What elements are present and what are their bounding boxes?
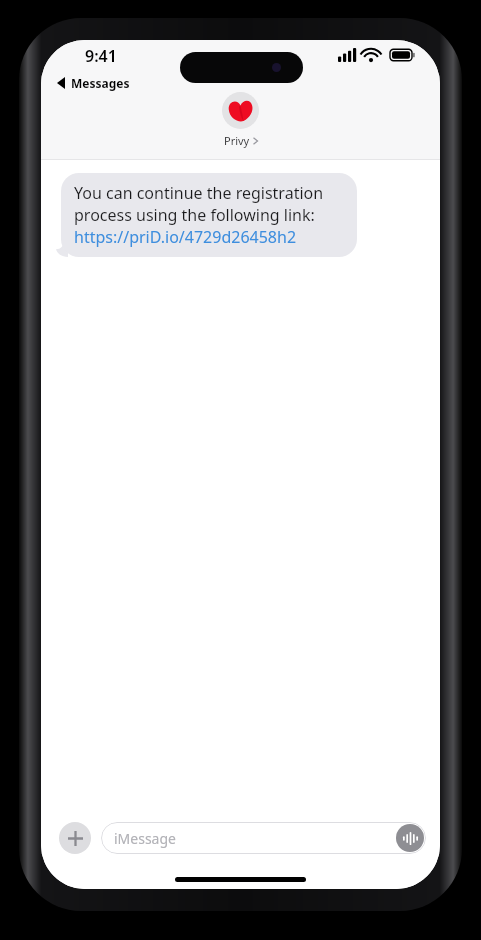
button[interactable]: You can continue the registration proces… xyxy=(61,173,357,257)
staticText: iMessage xyxy=(114,829,176,848)
staticText: You can continue the registration proces… xyxy=(74,182,344,248)
staticText: 9:41 xyxy=(85,45,117,67)
button[interactable]: Record audio message xyxy=(396,824,424,852)
staticText: Messages xyxy=(71,75,130,91)
button[interactable]: Messages xyxy=(51,72,136,94)
button[interactable]: Add attachment xyxy=(59,822,91,854)
staticText: Privy xyxy=(224,133,250,148)
button[interactable]: Privy contact details xyxy=(214,90,267,150)
button[interactable]: iMessage xyxy=(101,822,426,854)
